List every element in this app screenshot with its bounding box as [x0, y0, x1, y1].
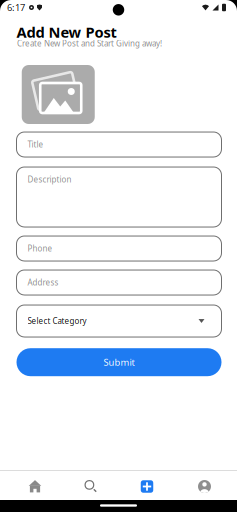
staticText: Description — [27, 174, 71, 185]
staticText: Submit — [103, 356, 134, 368]
staticText: Add New Post — [16, 22, 116, 42]
button[interactable] — [22, 65, 95, 124]
staticText: 6:17 — [7, 1, 25, 14]
button[interactable] — [122, 472, 172, 500]
button[interactable]: Title — [16, 132, 221, 157]
button[interactable] — [179, 472, 229, 500]
staticText: Title — [27, 139, 43, 150]
button[interactable] — [10, 472, 60, 500]
button[interactable] — [66, 472, 116, 500]
staticText: Select Category — [27, 316, 86, 326]
staticText: Address — [27, 277, 58, 288]
button[interactable]: Select Category — [16, 305, 221, 337]
staticText: Phone — [27, 243, 52, 254]
button[interactable]: Submit — [16, 348, 221, 376]
staticText: Create New Post and Start Giving away! — [17, 38, 162, 49]
button[interactable]: Phone — [16, 236, 221, 261]
button[interactable]: Description — [16, 167, 221, 227]
button[interactable]: Address — [16, 270, 221, 295]
